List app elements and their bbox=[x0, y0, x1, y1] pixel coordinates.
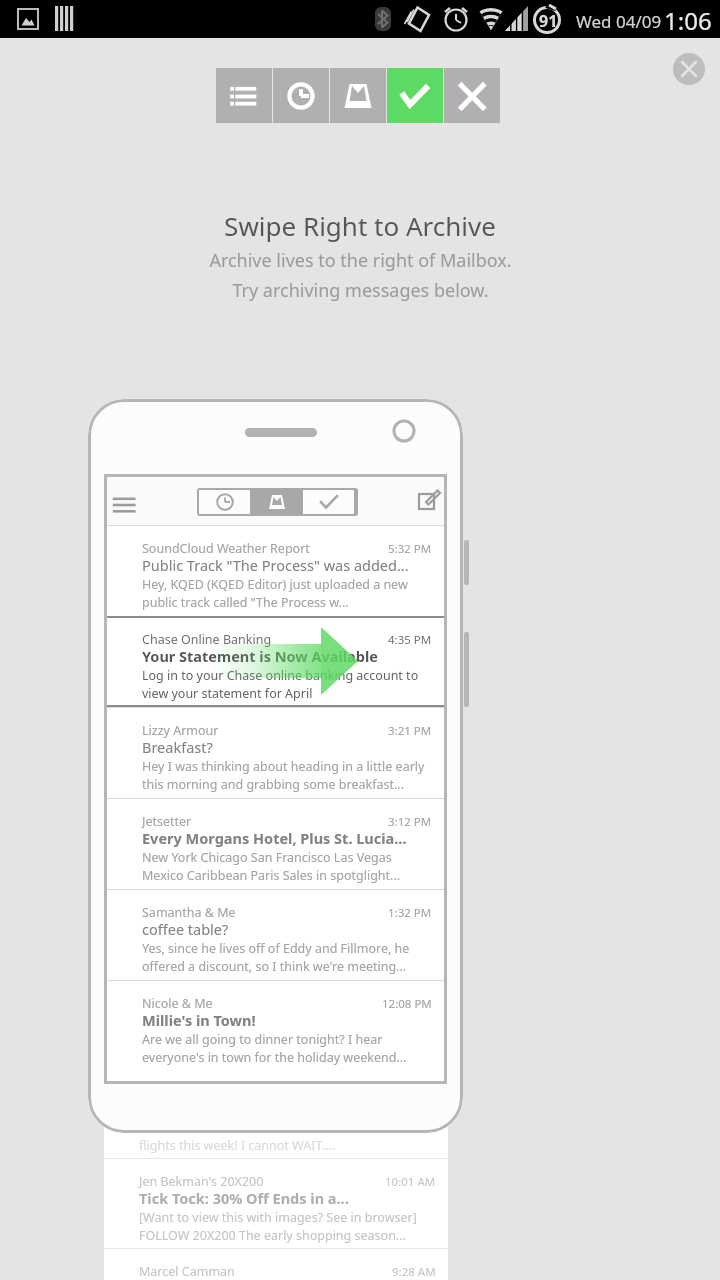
button[interactable]: Delete bbox=[444, 68, 500, 123]
button[interactable]: Archive bbox=[303, 490, 354, 514]
staticText: Samantha & Me bbox=[142, 904, 236, 921]
staticText: Jen Bekman's 20X200 bbox=[139, 1173, 264, 1190]
button[interactable]: Chase Online Banking bbox=[107, 616, 444, 707]
button[interactable]: List bbox=[216, 68, 272, 123]
staticText: Log in to your Chase online banking acco… bbox=[142, 667, 442, 684]
staticText: 3:12 PM bbox=[388, 814, 432, 830]
staticText: Every Morgans Hotel, Plus St. Lucia... bbox=[142, 828, 437, 848]
staticText: New York Chicago San Francisco Las Vegas bbox=[142, 849, 442, 866]
button[interactable]: Lizzy Armour bbox=[107, 707, 444, 798]
button[interactable]: SoundCloud Weather Report bbox=[107, 525, 444, 616]
staticText: 91 bbox=[539, 10, 558, 32]
button[interactable]: Samantha & Me bbox=[107, 889, 444, 980]
staticText: view your statement for April bbox=[142, 685, 442, 702]
staticText: Tick Tock: 30% Off Ends in a... bbox=[139, 1188, 434, 1208]
staticText: Mexico Caribbean Paris Sales in spotglig… bbox=[142, 867, 442, 884]
staticText: public track called "The Process w... bbox=[142, 594, 442, 611]
staticText: 3:21 PM bbox=[388, 723, 432, 739]
staticText: Millie's in Town! bbox=[142, 1010, 437, 1030]
staticText: 12:08 PM bbox=[382, 996, 432, 1012]
staticText: 9:28 AM bbox=[392, 1264, 436, 1280]
staticText: SoundCloud Weather Report bbox=[142, 540, 310, 557]
staticText: 10:01 AM bbox=[385, 1174, 436, 1190]
staticText: Wed 04/09 bbox=[576, 10, 662, 33]
staticText: Hey, KQED (KQED Editor) just uploaded a … bbox=[142, 576, 442, 593]
staticText: Yes, since he lives off of Eddy and Fill… bbox=[142, 940, 442, 957]
staticText: Lizzy Armour bbox=[142, 722, 219, 739]
staticText: Your Statement is Now Available bbox=[142, 646, 437, 666]
staticText: Breakfast? bbox=[142, 737, 437, 757]
button[interactable]: Inbox bbox=[330, 68, 386, 123]
staticText: this morning and grabbing some breakfast… bbox=[142, 776, 442, 793]
staticText: 4:35 PM bbox=[388, 632, 432, 648]
button[interactable]: Later bbox=[199, 490, 250, 514]
staticText: everyone's in town for the holiday weeke… bbox=[142, 1049, 442, 1066]
staticText: Nicole & Me bbox=[142, 995, 213, 1012]
staticText: 5:32 PM bbox=[388, 541, 432, 557]
staticText: Try archiving messages below. bbox=[232, 278, 489, 303]
staticText: Archive lives to the right of Mailbox. bbox=[209, 248, 512, 273]
staticText: Jetsetter bbox=[142, 813, 192, 830]
button[interactable]: Inbox bbox=[251, 490, 302, 514]
button[interactable]: Jen Bekman's 20X200 bbox=[104, 1158, 448, 1249]
staticText: [Want to view this with images? See in b… bbox=[139, 1209, 439, 1226]
staticText: 1:32 PM bbox=[388, 905, 432, 921]
button[interactable]: Archive bbox=[387, 68, 443, 123]
staticText: Are we all going to dinner tonight? I he… bbox=[142, 1031, 442, 1048]
staticText: Marcel Camman bbox=[139, 1263, 235, 1280]
staticText: 1:06 bbox=[664, 4, 712, 37]
staticText: coffee table? bbox=[142, 919, 437, 939]
staticText: Hey I was thinking about heading in a li… bbox=[142, 758, 442, 775]
staticText: Public Track "The Process" was added... bbox=[142, 555, 437, 575]
staticText: offered a discount, so I think we're mee… bbox=[142, 958, 442, 975]
staticText: Chase Online Banking bbox=[142, 631, 272, 648]
button[interactable]: Marcel Camman bbox=[104, 1248, 448, 1280]
button[interactable]: Snooze bbox=[273, 68, 329, 123]
staticText: FOLLOW 20X200 The early shopping season.… bbox=[139, 1227, 439, 1244]
button[interactable]: Jetsetter bbox=[107, 798, 444, 889]
button[interactable]: Nicole & Me bbox=[107, 980, 444, 1071]
staticText: flights this week! I cannot WAIT.... bbox=[139, 1137, 336, 1154]
staticText: Swipe Right to Archive bbox=[224, 208, 496, 243]
button[interactable]: Close bbox=[673, 53, 705, 85]
